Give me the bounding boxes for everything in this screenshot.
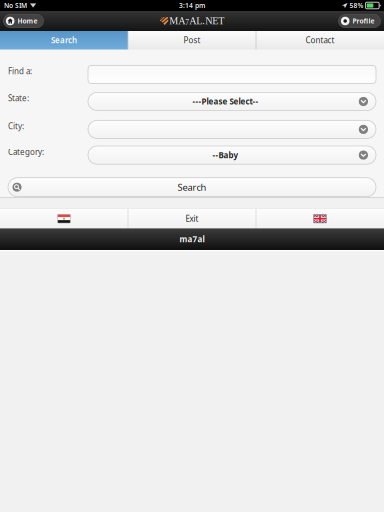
- staticText: Contact: [305, 35, 334, 45]
- button[interactable]: Find a: [88, 65, 376, 83]
- staticText: MA7AL.NET: [169, 15, 224, 26]
- button[interactable]: English: [256, 209, 384, 228]
- button[interactable]: Post: [128, 31, 256, 49]
- staticText: No SIM: [4, 1, 27, 10]
- staticText: City:: [8, 121, 24, 131]
- staticText: Home: [17, 17, 37, 25]
- staticText: Exit: [185, 213, 198, 224]
- button[interactable]: Contact: [256, 31, 384, 49]
- button[interactable]: Exit: [128, 209, 256, 228]
- staticText: Profile: [352, 17, 374, 25]
- button[interactable]: --Baby: [88, 146, 376, 164]
- staticText: State:: [8, 93, 29, 103]
- staticText: ---Please Select--: [192, 96, 258, 107]
- button[interactable]: [88, 120, 376, 138]
- button[interactable]: Search: [8, 178, 376, 197]
- button[interactable]: Profile: [338, 14, 380, 27]
- staticText: --Baby: [212, 150, 238, 160]
- button[interactable]: ---Please Select--: [88, 92, 376, 111]
- staticText: ma7al: [179, 234, 204, 244]
- staticText: Category:: [8, 146, 44, 157]
- button[interactable]: Arabic: [0, 209, 128, 228]
- staticText: 58%: [350, 1, 364, 10]
- staticText: 3:14 pm: [179, 1, 205, 10]
- staticText: Search: [177, 181, 206, 193]
- button[interactable]: Search: [0, 31, 128, 49]
- staticText: Find a:: [8, 66, 32, 76]
- staticText: Search: [51, 35, 77, 45]
- button[interactable]: Home: [3, 14, 43, 27]
- staticText: Post: [183, 35, 200, 45]
